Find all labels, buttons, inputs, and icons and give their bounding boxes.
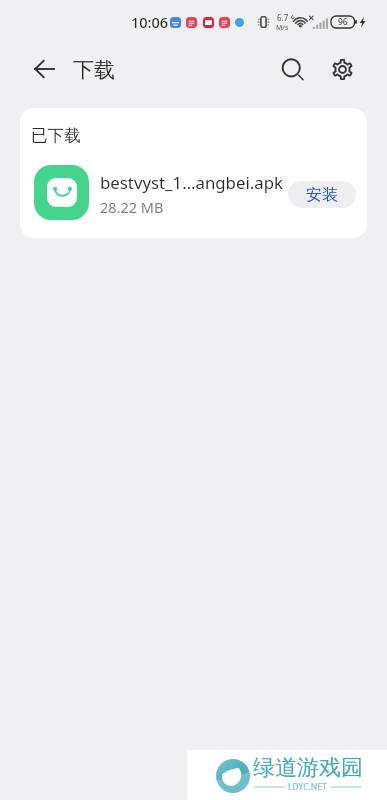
staticText: 6.7 <box>277 12 289 23</box>
button[interactable]: Settings <box>322 49 362 89</box>
staticText: 28.22 MB <box>100 197 164 217</box>
staticText: 已下载 <box>31 125 81 146</box>
staticText: bestvyst_1…angbei.apk <box>100 171 283 194</box>
staticText: 绿道游戏园 <box>253 754 363 782</box>
staticText: 10:06 <box>131 12 169 32</box>
staticText: 安装 <box>306 185 338 205</box>
button[interactable]: bestvyst_1…angbei.apk <box>20 157 367 231</box>
staticText: 下载 <box>73 57 115 83</box>
button[interactable]: Back <box>24 49 64 89</box>
staticText: M/s <box>276 23 289 33</box>
staticText: LDYC.NET <box>288 781 327 793</box>
staticText: 96 <box>338 16 348 28</box>
button[interactable]: 安装 <box>288 181 356 208</box>
button[interactable]: Search <box>272 49 312 89</box>
